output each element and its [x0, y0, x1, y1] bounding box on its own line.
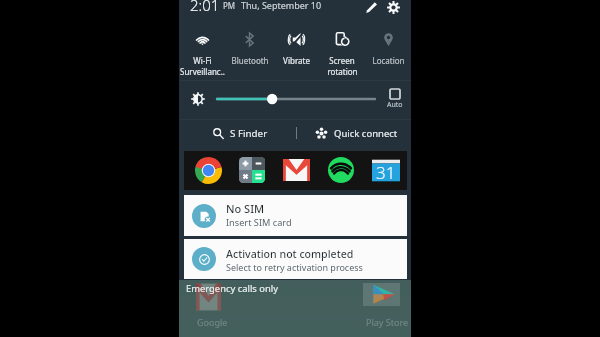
staticText: Vibrate: [283, 55, 310, 66]
button[interactable]: Edit quick settings: [362, 0, 380, 16]
button[interactable]: Quick connect: [315, 121, 411, 145]
staticText: PM: [223, 0, 236, 11]
staticText: Insert SIM card: [226, 216, 292, 229]
staticText: S Finder: [230, 127, 268, 140]
button[interactable]: Auto brightness: [384, 89, 406, 110]
button[interactable]: Calendar: [370, 154, 402, 186]
button[interactable]: Spotify: [325, 154, 357, 186]
staticText: Activation not completed: [226, 247, 354, 261]
button[interactable]: Activation not completed: [184, 239, 407, 279]
button[interactable]: Vibrate: [273, 28, 319, 76]
staticText: rotation: [327, 66, 358, 76]
button[interactable]: [217, 91, 375, 107]
button[interactable]: Bluetooth: [226, 28, 273, 76]
staticText: Surveillanc...: [179, 66, 226, 76]
staticText: Google: [197, 316, 228, 328]
staticText: Wi-Fi: [193, 55, 212, 66]
button[interactable]: Calculator: [236, 154, 268, 186]
button[interactable]: Wi-Fi: [179, 28, 226, 76]
staticText: Quick connect: [334, 127, 398, 140]
staticText: Select to retry activation process: [226, 261, 363, 273]
button[interactable]: S Finder: [213, 121, 297, 145]
staticText: Bluetooth: [231, 55, 269, 66]
button[interactable]: Settings: [384, 0, 402, 16]
staticText: Auto: [387, 100, 403, 110]
button[interactable]: No SIM: [184, 195, 407, 236]
staticText: Play Store: [366, 316, 408, 328]
staticText: No SIM: [226, 201, 265, 216]
staticText: Emergency calls only: [186, 282, 278, 295]
staticText: Location: [372, 55, 405, 66]
button[interactable]: Screen: [319, 28, 365, 76]
staticText: 2:01: [190, 0, 220, 15]
button[interactable]: Chrome: [192, 154, 224, 186]
staticText: Thu, September 10: [241, 0, 322, 11]
staticText: Screen: [329, 55, 355, 66]
button[interactable]: Gmail: [280, 154, 312, 186]
staticText: 31: [376, 161, 396, 184]
button[interactable]: Location: [365, 28, 411, 76]
